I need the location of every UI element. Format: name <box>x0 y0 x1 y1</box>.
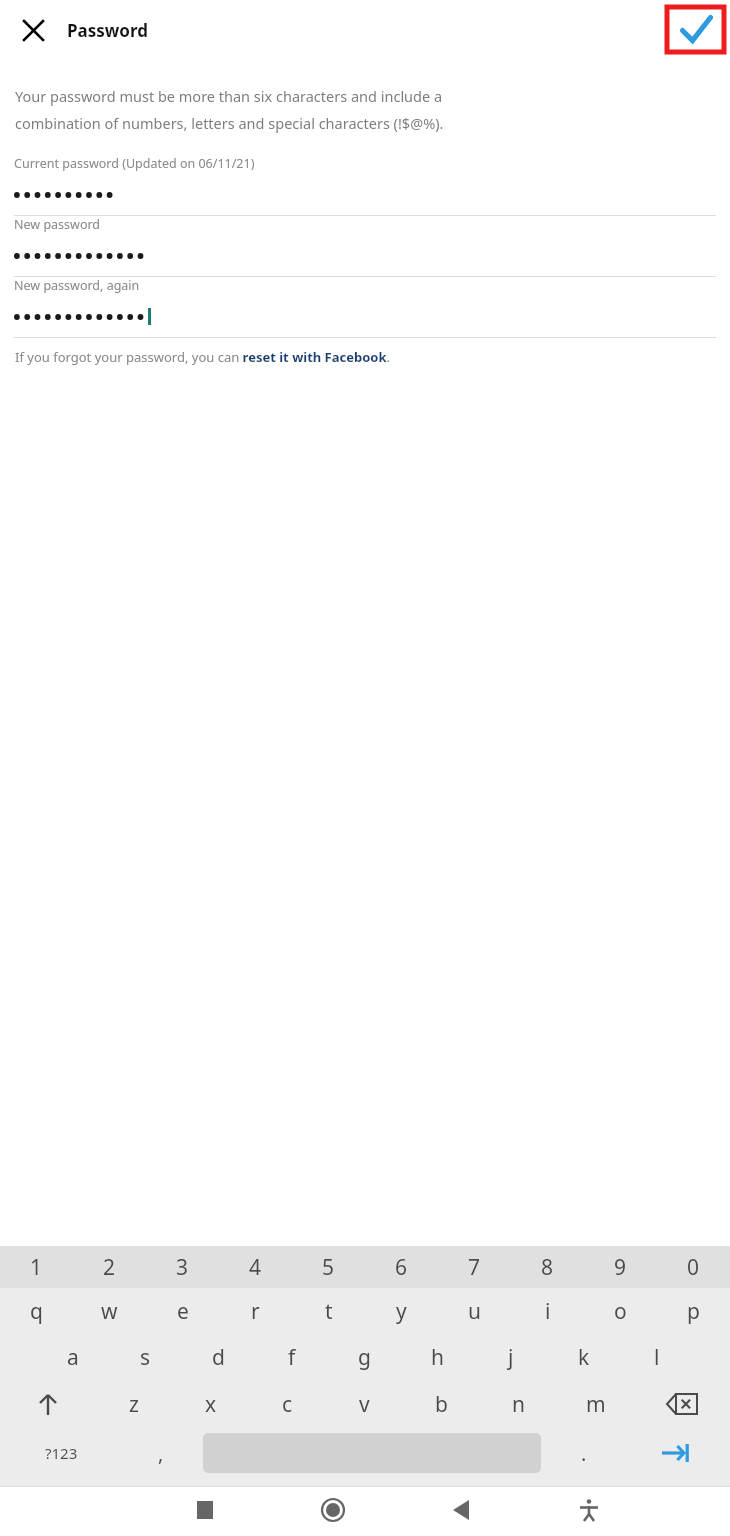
staticText: r <box>251 1297 260 1326</box>
staticText: w <box>101 1297 118 1326</box>
staticText: n <box>512 1390 525 1419</box>
staticText: f <box>288 1343 296 1372</box>
button[interactable]: New password, again <box>0 277 730 338</box>
button[interactable]: Recents <box>141 1487 269 1532</box>
button[interactable]: i <box>511 1288 584 1334</box>
button[interactable]: p <box>657 1288 730 1334</box>
staticText: 5 <box>322 1253 335 1282</box>
button[interactable]: ?123 <box>0 1428 122 1478</box>
staticText: 2 <box>103 1253 116 1282</box>
staticText: combination of numbers, letters and spec… <box>15 113 444 133</box>
button[interactable]: z <box>95 1380 172 1428</box>
staticText: 9 <box>614 1253 627 1282</box>
staticText: If you forgot your password, you can res… <box>15 348 391 366</box>
button[interactable]: 1 <box>0 1246 73 1288</box>
button[interactable]: j <box>474 1334 547 1380</box>
staticText: l <box>654 1343 660 1372</box>
button[interactable]: 2 <box>73 1246 146 1288</box>
staticText: v <box>359 1390 370 1419</box>
button[interactable]: t <box>292 1288 365 1334</box>
button[interactable]: 5 <box>292 1246 365 1288</box>
staticText: u <box>468 1297 481 1326</box>
button[interactable]: l <box>620 1334 693 1380</box>
button[interactable]: Accessibility <box>525 1487 653 1532</box>
button[interactable]: 4 <box>219 1246 292 1288</box>
button[interactable]: u <box>438 1288 511 1334</box>
button[interactable]: v <box>326 1380 403 1428</box>
staticText: m <box>586 1390 606 1419</box>
staticText: 0 <box>687 1253 700 1282</box>
staticText: 3 <box>176 1253 189 1282</box>
staticText: New password, again <box>14 277 140 294</box>
button[interactable]: 8 <box>511 1246 584 1288</box>
button[interactable]: g <box>328 1334 401 1380</box>
button[interactable]: 3 <box>146 1246 219 1288</box>
staticText: Password <box>67 19 148 42</box>
button[interactable]: Current password (Updated on 06/11/21) <box>0 155 730 216</box>
button[interactable]: c <box>249 1380 326 1428</box>
button[interactable]: New password <box>0 216 730 277</box>
staticText: t <box>325 1297 333 1326</box>
button[interactable]: . <box>545 1428 622 1478</box>
staticText: k <box>578 1343 590 1372</box>
button[interactable]: m <box>557 1380 634 1428</box>
staticText: . <box>581 1440 587 1467</box>
button[interactable]: q <box>0 1288 73 1334</box>
staticText: j <box>508 1343 514 1372</box>
staticText: New password <box>14 216 101 233</box>
staticText: 8 <box>541 1253 554 1282</box>
button[interactable]: 9 <box>584 1246 657 1288</box>
button[interactable]: e <box>146 1288 219 1334</box>
staticText: a <box>67 1343 79 1372</box>
button[interactable]: o <box>584 1288 657 1334</box>
staticText: b <box>435 1390 448 1419</box>
button[interactable]: b <box>403 1380 480 1428</box>
staticText: z <box>129 1390 139 1419</box>
button[interactable]: 0 <box>657 1246 730 1288</box>
staticText: s <box>140 1343 151 1372</box>
staticText: o <box>614 1297 627 1326</box>
staticText: p <box>687 1297 700 1326</box>
button[interactable]: r <box>219 1288 292 1334</box>
staticText: i <box>545 1297 551 1326</box>
button[interactable]: w <box>73 1288 146 1334</box>
staticText: q <box>30 1297 43 1326</box>
staticText: 7 <box>468 1253 481 1282</box>
button[interactable]: x <box>172 1380 249 1428</box>
staticText: Current password (Updated on 06/11/21) <box>14 155 255 172</box>
staticText: 4 <box>249 1253 262 1282</box>
staticText: c <box>282 1390 293 1419</box>
button[interactable]: Backspace <box>634 1380 730 1428</box>
staticText: Your password must be more than six char… <box>15 86 443 106</box>
button[interactable]: k <box>547 1334 620 1380</box>
button[interactable]: Shift <box>0 1380 95 1428</box>
button[interactable]: Close <box>12 9 54 51</box>
button[interactable]: s <box>109 1334 182 1380</box>
staticText: d <box>212 1343 225 1372</box>
staticText: g <box>358 1343 371 1372</box>
staticText: h <box>431 1343 444 1372</box>
staticText: 6 <box>395 1253 408 1282</box>
button[interactable]: If you forgot your password, you can res… <box>15 348 391 366</box>
button[interactable]: 6 <box>365 1246 438 1288</box>
button[interactable]: , <box>122 1428 199 1478</box>
button[interactable]: Next <box>622 1428 730 1478</box>
button[interactable]: y <box>365 1288 438 1334</box>
staticText: 1 <box>30 1253 43 1282</box>
button[interactable]: n <box>480 1380 557 1428</box>
button[interactable]: f <box>255 1334 328 1380</box>
staticText: , <box>158 1440 164 1467</box>
staticText: y <box>396 1297 407 1326</box>
staticText: ?123 <box>45 1443 78 1463</box>
button[interactable]: h <box>401 1334 474 1380</box>
button[interactable]: Back <box>397 1487 525 1532</box>
button[interactable]: a <box>36 1334 109 1380</box>
button[interactable]: d <box>182 1334 255 1380</box>
button[interactable]: Home <box>269 1487 397 1532</box>
staticText: x <box>205 1390 217 1419</box>
button[interactable]: 7 <box>438 1246 511 1288</box>
staticText: e <box>177 1297 189 1326</box>
button[interactable]: Confirm <box>667 7 724 52</box>
